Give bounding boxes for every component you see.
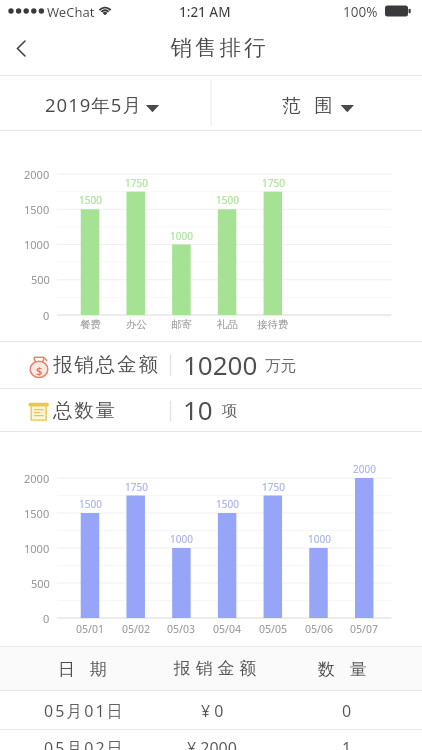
staticText: 1500	[79, 193, 102, 207]
staticText: $	[36, 363, 43, 378]
staticText: 1	[342, 737, 352, 750]
staticText: ¥ 2000	[187, 737, 237, 750]
staticText: 1750	[262, 176, 285, 190]
staticText: 1000	[308, 532, 331, 546]
staticText: 1000	[24, 237, 50, 252]
staticText: 1750	[262, 480, 285, 494]
staticText: 礼品	[217, 318, 238, 331]
staticText: 范 围	[282, 92, 338, 117]
staticText: 1500	[24, 202, 50, 217]
staticText: 0	[342, 700, 352, 722]
staticText: 500	[31, 576, 50, 591]
staticText: 100%	[343, 3, 378, 21]
staticText: 05月01日	[44, 700, 125, 722]
staticText: 日 期	[58, 657, 112, 680]
staticText: 1500	[79, 497, 102, 511]
staticText: 1:21 AM	[179, 3, 231, 21]
staticText: 10	[183, 392, 213, 427]
button[interactable]	[0, 76, 211, 130]
staticText: 总数量	[53, 398, 117, 423]
staticText: 05/06	[305, 622, 333, 636]
staticText: WeChat	[47, 3, 95, 21]
staticText: 办公	[126, 318, 147, 331]
staticText: 万元	[265, 356, 296, 376]
staticText: 500	[31, 272, 50, 287]
staticText: 邮寄	[171, 318, 192, 331]
staticText: 报销总金额	[53, 352, 160, 377]
staticText: 2019年5月	[45, 92, 142, 117]
staticText: 接待费	[257, 318, 289, 331]
staticText: 1000	[170, 532, 193, 546]
staticText: 2000	[24, 471, 50, 486]
staticText: 05月02日	[44, 737, 125, 750]
staticText: 1500	[216, 497, 239, 511]
staticText: 1750	[125, 480, 148, 494]
staticText: 数 量	[318, 657, 372, 680]
staticText: 项	[222, 401, 238, 421]
staticText: 05/02	[122, 622, 150, 636]
staticText: ¥ 0	[201, 700, 224, 722]
button[interactable]	[211, 76, 422, 130]
staticText: 2000	[24, 167, 50, 182]
staticText: 2000	[353, 462, 376, 476]
staticText: 1500	[24, 506, 50, 521]
button[interactable]	[0, 22, 52, 75]
staticText: 05/05	[259, 622, 287, 636]
staticText: 1000	[170, 229, 193, 243]
staticText: 0	[43, 611, 50, 626]
staticText: 1750	[125, 176, 148, 190]
staticText: 0	[43, 308, 50, 323]
staticText: 销售排行	[169, 34, 267, 61]
staticText: 05/01	[76, 622, 104, 636]
staticText: 报销金额	[171, 658, 259, 679]
staticText: 1500	[216, 193, 239, 207]
staticText: 05/04	[213, 622, 241, 636]
staticText: 05/03	[167, 622, 195, 636]
staticText: 10200	[183, 347, 258, 382]
staticText: 餐费	[80, 318, 101, 331]
staticText: 1000	[24, 541, 50, 556]
staticText: 05/07	[350, 622, 378, 636]
